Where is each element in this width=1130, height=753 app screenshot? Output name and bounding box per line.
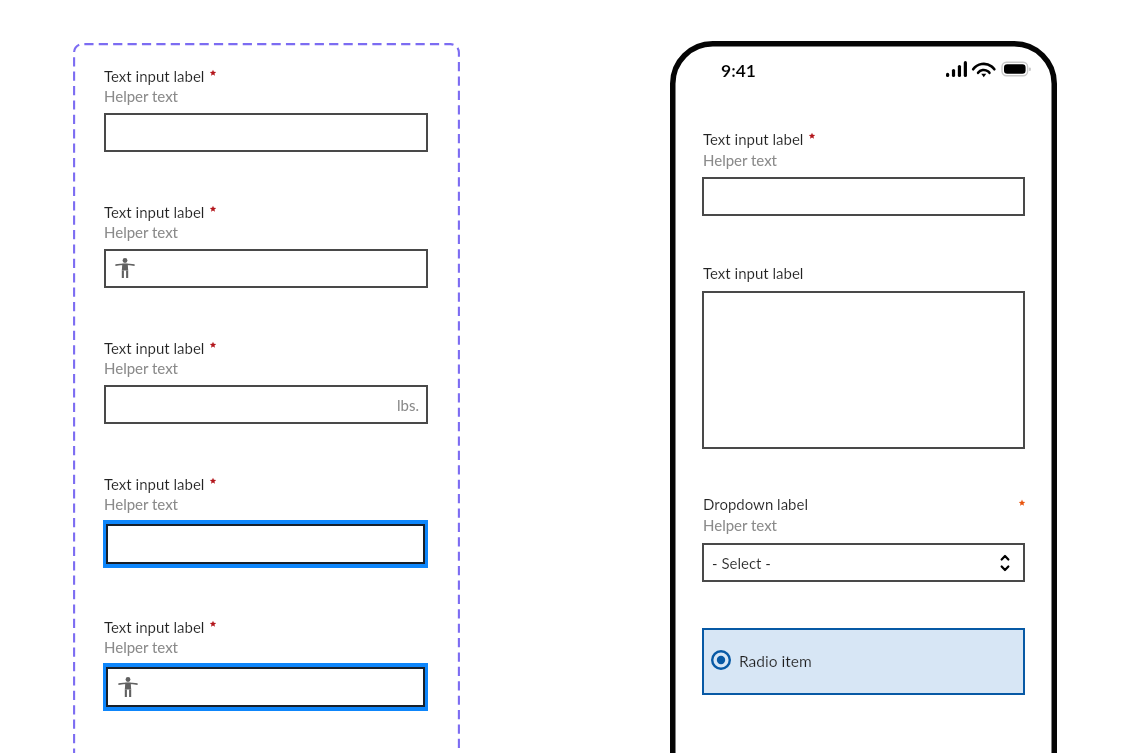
staticText: Text input label xyxy=(104,203,205,221)
staticText: Text input label xyxy=(104,475,205,493)
staticText: Text input label xyxy=(104,67,205,85)
staticText: Helper text xyxy=(104,359,179,377)
staticText: Text input label xyxy=(104,618,205,636)
button[interactable]: Radio item selected xyxy=(711,628,1025,695)
staticText: Helper text xyxy=(703,516,778,534)
staticText: lbs. xyxy=(397,396,419,414)
staticText: Helper text xyxy=(104,638,179,656)
button[interactable] xyxy=(103,520,428,568)
button[interactable] xyxy=(702,291,1025,449)
button[interactable] xyxy=(104,113,428,152)
staticText: Radio item xyxy=(739,652,812,671)
other: Radio item selected xyxy=(711,650,731,670)
staticText: 9:41 xyxy=(721,60,756,81)
staticText: Text input label xyxy=(703,130,804,148)
other: Accessibility xyxy=(118,677,138,697)
button[interactable]: Accessibility xyxy=(104,249,428,288)
staticText: Helper text xyxy=(104,495,179,513)
button[interactable] xyxy=(702,177,1025,216)
staticText: - Select - xyxy=(712,554,771,572)
staticText: Helper text xyxy=(104,223,179,241)
button[interactable]: lbs. xyxy=(104,385,428,424)
staticText: Text input label xyxy=(104,339,205,357)
button[interactable]: Accessibility xyxy=(103,663,428,711)
other: Accessibility xyxy=(115,258,135,278)
staticText: Dropdown label xyxy=(703,495,808,513)
button[interactable]: - Select - xyxy=(702,543,1025,582)
staticText: Helper text xyxy=(703,151,778,169)
staticText: Text input label xyxy=(703,264,804,282)
other: Open dropdown xyxy=(1001,555,1009,571)
staticText: Helper text xyxy=(104,87,179,105)
